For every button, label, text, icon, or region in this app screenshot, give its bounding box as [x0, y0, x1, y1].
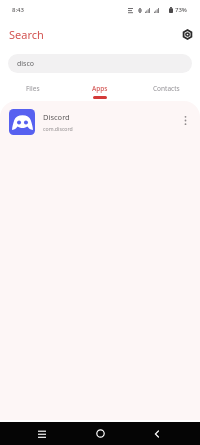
button[interactable]: Home: [88, 422, 112, 445]
button[interactable]: Apps: [66, 78, 133, 101]
button[interactable]: Contacts: [133, 78, 200, 101]
staticText: Apps: [92, 84, 108, 93]
button[interactable]: Back: [145, 422, 169, 445]
button[interactable]: Files: [0, 78, 66, 101]
staticText: com.discord: [43, 125, 73, 132]
button[interactable]: Recents: [30, 422, 54, 445]
staticText: 8:43: [12, 6, 24, 14]
staticText: Files: [26, 84, 40, 93]
button[interactable]: Discord: [0, 105, 200, 138]
staticText: disco: [17, 59, 35, 69]
staticText: Contacts: [153, 84, 180, 93]
button[interactable]: More options: [175, 110, 195, 130]
staticText: Search: [9, 27, 44, 42]
button[interactable]: disco: [8, 54, 192, 73]
staticText: 73%: [175, 6, 187, 14]
button[interactable]: Settings: [176, 23, 198, 45]
staticText: Discord: [43, 112, 70, 122]
